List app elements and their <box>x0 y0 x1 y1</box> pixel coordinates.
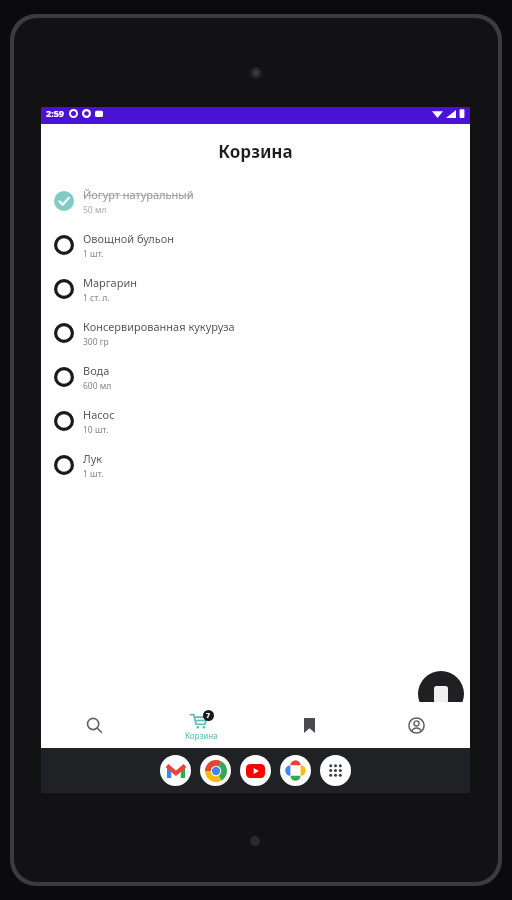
staticText: Овощной бульон <box>83 231 174 246</box>
button[interactable]: Приложение <box>240 755 271 786</box>
button[interactable]: Йогурт натуральный <box>41 179 470 223</box>
staticText: Маргарин <box>83 275 137 290</box>
button[interactable]: Лук <box>41 443 470 487</box>
button[interactable]: Маргарин <box>41 267 470 311</box>
staticText: Лук <box>83 451 103 466</box>
button[interactable]: Приложение <box>320 755 351 786</box>
button[interactable]: Насос <box>41 399 470 443</box>
button[interactable]: Очистить корзину <box>418 671 464 717</box>
button[interactable]: Приложение <box>280 755 311 786</box>
button[interactable]: Приложение <box>160 755 191 786</box>
button[interactable]: Вода <box>41 355 470 399</box>
staticText: 10 шт. <box>83 424 109 436</box>
button[interactable]: Закладки <box>256 702 363 748</box>
button[interactable]: Консервированная кукуруза <box>41 311 470 355</box>
button[interactable]: Приложение <box>200 755 231 786</box>
staticText: Корзина <box>185 730 218 741</box>
staticText: 50 мл <box>83 204 107 216</box>
button[interactable]: 7 <box>148 702 255 748</box>
staticText: Корзина <box>218 140 293 163</box>
staticText: 7 <box>206 711 211 721</box>
button[interactable]: Профиль <box>363 702 470 748</box>
staticText: 1 шт. <box>83 248 104 260</box>
staticText: 300 гр <box>83 336 109 348</box>
staticText: Насос <box>83 407 115 422</box>
staticText: Консервированная кукуруза <box>83 319 235 334</box>
staticText: 1 ст. л. <box>83 292 110 304</box>
staticText: Вода <box>83 363 110 378</box>
button[interactable]: Поиск <box>41 702 148 748</box>
staticText: 1 шт. <box>83 468 104 480</box>
staticText: Йогурт натуральный <box>83 187 194 202</box>
staticText: 600 мл <box>83 380 112 392</box>
staticText: 2:59 <box>46 107 64 119</box>
button[interactable]: Овощной бульон <box>41 223 470 267</box>
